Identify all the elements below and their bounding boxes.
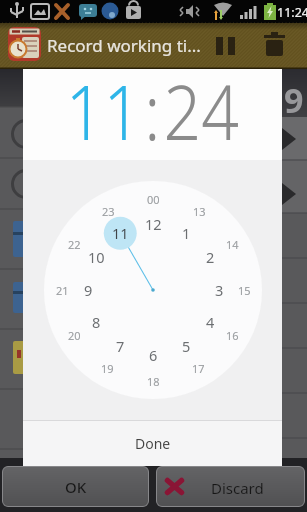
staticText: 11 bbox=[66, 60, 141, 151]
staticText: 15 bbox=[238, 283, 251, 298]
staticText: 12 bbox=[145, 214, 162, 234]
staticText: : bbox=[144, 60, 161, 151]
button[interactable]: Discard bbox=[156, 466, 305, 507]
staticText: 8 bbox=[92, 312, 101, 332]
staticText: 14 bbox=[226, 237, 239, 252]
staticText: 11:24 bbox=[277, 4, 307, 21]
button[interactable]: OK bbox=[2, 466, 149, 507]
staticText: Discard bbox=[211, 478, 264, 498]
staticText: 1 bbox=[182, 223, 191, 243]
staticText: 13 bbox=[193, 204, 206, 219]
button[interactable] bbox=[258, 27, 298, 67]
staticText: 21 bbox=[56, 283, 69, 298]
staticText: 7 bbox=[116, 336, 125, 356]
staticText: 20 bbox=[68, 328, 81, 343]
staticText: 11 bbox=[112, 223, 129, 243]
staticText: 10 bbox=[88, 247, 105, 267]
staticText: 16 bbox=[226, 328, 239, 343]
staticText: 2 bbox=[206, 247, 215, 267]
staticText: 22 bbox=[68, 237, 81, 252]
staticText: 19 bbox=[101, 361, 114, 376]
staticText: 3 bbox=[215, 280, 224, 300]
button[interactable]: Done bbox=[23, 420, 282, 466]
staticText: 6 bbox=[149, 345, 158, 365]
staticText: 24 bbox=[163, 60, 239, 151]
staticText: Done bbox=[135, 434, 171, 453]
button[interactable] bbox=[208, 27, 248, 67]
staticText: 00 bbox=[147, 192, 160, 207]
staticText: 18 bbox=[147, 374, 160, 389]
staticText: 9 bbox=[284, 77, 304, 123]
staticText: 23 bbox=[102, 204, 115, 219]
staticText: 4 bbox=[206, 312, 215, 332]
staticText: 5 bbox=[182, 336, 191, 356]
staticText: 9 bbox=[84, 280, 93, 300]
staticText: OK bbox=[65, 477, 87, 497]
staticText: Record working ti... bbox=[47, 34, 201, 57]
staticText: 17 bbox=[192, 361, 205, 376]
